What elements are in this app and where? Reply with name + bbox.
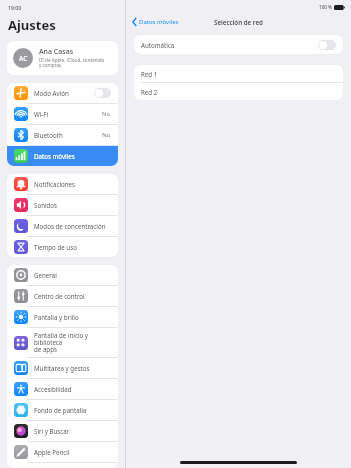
button[interactable]: Notificaciones xyxy=(7,174,118,195)
button[interactable]: Sonidos xyxy=(7,195,118,216)
staticText: 100 % xyxy=(319,4,332,10)
button[interactable]: Pantalla de inicio y biblioteca de apps xyxy=(7,328,118,358)
button[interactable]: Pantalla y brillo xyxy=(7,307,118,328)
staticText: Notificaciones xyxy=(34,180,111,188)
button[interactable]: Red 1 xyxy=(134,65,343,82)
button[interactable]: Red 2 xyxy=(134,83,343,100)
staticText: Pantalla de inicio y biblioteca de apps xyxy=(34,331,111,354)
staticText: Multitarea y gestos xyxy=(34,364,111,372)
button[interactable]: Multitarea y gestos xyxy=(7,358,118,379)
button[interactable]: Automática xyxy=(141,35,336,54)
button[interactable]: Accesibilidad xyxy=(7,379,118,400)
staticText: AC xyxy=(19,54,28,63)
staticText: Tiempo de uso xyxy=(34,243,111,251)
staticText: Apple Pencil xyxy=(34,448,111,456)
staticText: Selección de red xyxy=(214,18,263,26)
staticText: Siri y Buscar xyxy=(34,427,111,435)
staticText: General xyxy=(34,271,111,279)
staticText: Sonidos xyxy=(34,201,111,209)
button[interactable]: Modo Avión xyxy=(94,88,111,98)
button[interactable]: Modo Avión xyxy=(7,83,118,104)
staticText: No xyxy=(102,110,111,118)
staticText: No xyxy=(102,131,111,139)
button[interactable]: General xyxy=(7,265,118,286)
staticText: Accesibilidad xyxy=(34,385,111,393)
staticText: Fondo de pantalla xyxy=(34,406,111,414)
button[interactable]: Datos móviles xyxy=(7,146,118,166)
button[interactable]: AC xyxy=(13,47,112,69)
staticText: Centro de control xyxy=(34,292,111,300)
staticText: Pantalla y brillo xyxy=(34,313,111,321)
staticText: Ana Casas xyxy=(39,47,74,57)
button[interactable]: Fondo de pantalla xyxy=(7,400,118,421)
button[interactable]: Automática xyxy=(318,40,336,50)
button[interactable]: Centro de control xyxy=(7,286,118,307)
staticText: Wi-Fi xyxy=(34,110,102,118)
staticText: Bluetooth xyxy=(34,131,102,139)
button[interactable]: Bluetooth xyxy=(7,125,118,146)
staticText: Ajustes xyxy=(8,16,56,34)
staticText: Datos móviles xyxy=(34,152,111,160)
staticText: Modos de concentración xyxy=(34,222,111,230)
staticText: 19:00 xyxy=(8,4,22,11)
staticText: Modo Avión xyxy=(34,89,94,97)
staticText: Automática xyxy=(141,41,318,49)
staticText: Datos móviles xyxy=(139,18,179,26)
staticText: ID de Apple, iCloud, contenido y compras xyxy=(39,57,105,69)
button[interactable]: Wi-Fi xyxy=(7,104,118,125)
button[interactable]: Modos de concentración xyxy=(7,216,118,237)
staticText: Red 2 xyxy=(141,88,158,96)
button[interactable]: Siri y Buscar xyxy=(7,421,118,442)
button[interactable]: Tiempo de uso xyxy=(7,237,118,257)
staticText: Red 1 xyxy=(141,70,158,78)
button[interactable]: Datos móviles xyxy=(130,16,181,28)
button[interactable]: Apple Pencil xyxy=(7,442,118,463)
